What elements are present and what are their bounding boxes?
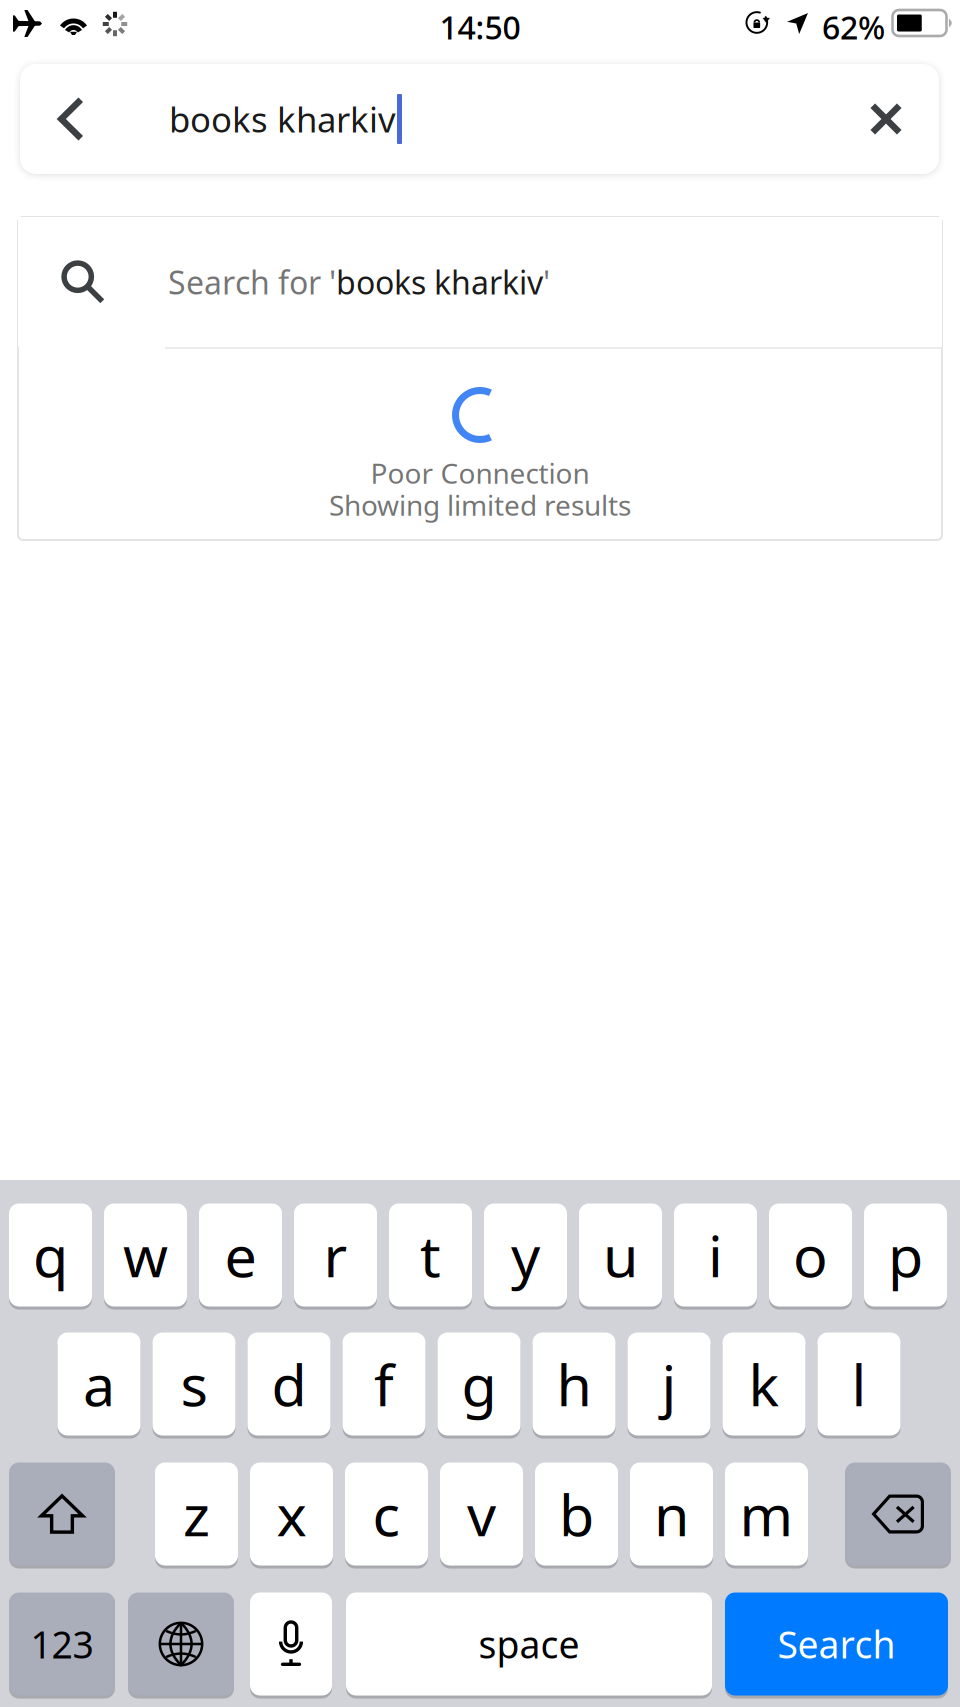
staticText: f — [374, 1346, 394, 1422]
button[interactable]: g — [437, 1331, 520, 1437]
button[interactable]: y — [484, 1202, 567, 1308]
button[interactable]: b — [535, 1461, 618, 1567]
staticText: 14:50 — [439, 6, 520, 48]
button[interactable]: h — [532, 1331, 615, 1437]
button[interactable]: t — [389, 1202, 472, 1308]
staticText: a — [83, 1346, 115, 1422]
button[interactable]: d — [247, 1331, 330, 1437]
staticText: Search for ' — [168, 261, 336, 303]
button[interactable]: s — [152, 1331, 235, 1437]
staticText: Search — [777, 1619, 895, 1669]
button[interactable]: Delete — [845, 1461, 951, 1567]
staticText: n — [654, 1476, 689, 1552]
staticText: h — [556, 1346, 591, 1422]
button[interactable]: z — [155, 1461, 238, 1567]
staticText: u — [603, 1217, 638, 1293]
button[interactable]: c — [345, 1461, 428, 1567]
button[interactable]: Dictation — [250, 1591, 332, 1697]
staticText: e — [224, 1217, 256, 1293]
button[interactable]: Shift — [9, 1461, 115, 1567]
button[interactable]: e — [199, 1202, 282, 1308]
staticText: books kharkiv — [169, 96, 396, 142]
staticText: o — [793, 1217, 828, 1293]
button[interactable]: l — [817, 1331, 900, 1437]
button[interactable]: m — [725, 1461, 808, 1567]
button[interactable]: Search for ' — [18, 217, 942, 347]
staticText: 123 — [30, 1619, 93, 1669]
staticText: p — [888, 1217, 923, 1293]
staticText: l — [851, 1346, 866, 1422]
staticText: g — [461, 1346, 496, 1422]
button[interactable]: i — [674, 1202, 757, 1308]
button[interactable]: n — [630, 1461, 713, 1567]
staticText: Showing limited results — [329, 486, 631, 524]
button[interactable]: x — [250, 1461, 333, 1567]
staticText: c — [372, 1476, 400, 1552]
staticText: s — [180, 1346, 207, 1422]
staticText: Poor Connection — [370, 454, 589, 492]
button[interactable]: o — [769, 1202, 852, 1308]
button[interactable]: q — [9, 1202, 92, 1308]
staticText: q — [33, 1217, 68, 1293]
staticText: space — [478, 1619, 579, 1669]
staticText: x — [276, 1476, 306, 1552]
button[interactable]: Clear search — [831, 64, 941, 174]
button[interactable]: space — [346, 1591, 712, 1697]
staticText: b — [559, 1476, 594, 1552]
staticText: k — [748, 1346, 779, 1422]
staticText: v — [467, 1476, 496, 1552]
staticText: ' — [543, 261, 550, 303]
staticText: r — [323, 1217, 347, 1293]
button[interactable]: Back — [21, 64, 121, 174]
button[interactable]: f — [342, 1331, 425, 1437]
button[interactable]: Search — [725, 1591, 948, 1697]
staticText: m — [739, 1476, 793, 1552]
button[interactable]: p — [864, 1202, 947, 1308]
staticText: y — [511, 1217, 540, 1293]
button[interactable]: Switch keyboard — [128, 1591, 234, 1697]
button[interactable]: j — [627, 1331, 710, 1437]
staticText: d — [271, 1346, 306, 1422]
staticText: t — [420, 1217, 441, 1293]
button[interactable]: a — [57, 1331, 140, 1437]
button[interactable]: k — [722, 1331, 805, 1437]
button[interactable]: u — [579, 1202, 662, 1308]
staticText: w — [123, 1217, 168, 1293]
button[interactable]: v — [440, 1461, 523, 1567]
staticText: z — [183, 1476, 210, 1552]
staticText: j — [661, 1346, 676, 1422]
staticText: i — [708, 1217, 723, 1293]
staticText: 62% — [822, 6, 885, 48]
button[interactable]: r — [294, 1202, 377, 1308]
staticText: books kharkiv — [336, 261, 543, 303]
button[interactable]: 123 — [9, 1591, 115, 1697]
button[interactable]: w — [104, 1202, 187, 1308]
